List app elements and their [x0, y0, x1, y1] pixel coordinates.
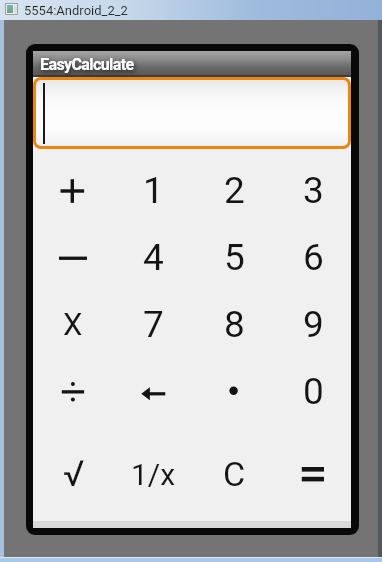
button[interactable]: 4 — [113, 224, 193, 290]
button[interactable]: 6 — [273, 224, 353, 290]
staticText: 7 — [143, 303, 164, 346]
button[interactable]: X — [33, 291, 113, 357]
button[interactable]: 1 — [113, 157, 193, 223]
staticText: C — [223, 454, 246, 494]
button[interactable] — [33, 157, 113, 223]
button[interactable]: 1/x — [113, 441, 193, 507]
staticText: X — [63, 306, 83, 342]
button[interactable]: 9 — [273, 291, 353, 357]
button[interactable] — [273, 441, 353, 507]
button[interactable] — [36, 80, 348, 146]
button[interactable] — [33, 358, 113, 424]
staticText: 2 — [224, 169, 245, 212]
staticText: 5554:Android_2_2 — [24, 3, 128, 18]
button[interactable]: 2 — [194, 157, 274, 223]
staticText: 9 — [303, 303, 324, 346]
button[interactable] — [194, 358, 274, 424]
button[interactable]: 5 — [194, 224, 274, 290]
staticText: 5 — [224, 236, 245, 279]
button[interactable]: 8 — [194, 291, 274, 357]
button[interactable]: 0 — [273, 358, 353, 424]
staticText: 0 — [303, 370, 324, 413]
button[interactable]: 3 — [273, 157, 353, 223]
button[interactable]: 7 — [113, 291, 193, 357]
staticText: 4 — [143, 236, 164, 279]
staticText: 1/x — [131, 457, 176, 492]
staticText: √ — [63, 453, 85, 495]
button[interactable]: √ — [34, 441, 114, 507]
button[interactable]: C — [194, 441, 274, 507]
button[interactable] — [113, 358, 193, 424]
staticText: 8 — [224, 303, 245, 346]
staticText: EasyCalculate — [40, 55, 134, 74]
button[interactable] — [33, 224, 113, 290]
staticText: 6 — [303, 236, 324, 279]
staticText: 3 — [303, 169, 324, 212]
staticText: 1 — [143, 169, 164, 212]
